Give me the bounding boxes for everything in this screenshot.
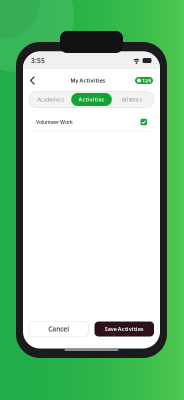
staticText: Cancel bbox=[48, 325, 69, 333]
button[interactable]: Cancel bbox=[29, 321, 88, 336]
button[interactable]: Points bbox=[135, 77, 153, 84]
staticText: Save Activities bbox=[105, 325, 144, 333]
staticText: 3:55 bbox=[31, 56, 45, 65]
staticText: Athletics bbox=[122, 96, 143, 103]
button[interactable]: Academics bbox=[30, 93, 71, 106]
staticText: Activities bbox=[78, 96, 104, 103]
staticText: 124 bbox=[142, 77, 151, 84]
button[interactable]: Athletics bbox=[112, 93, 152, 106]
button[interactable]: Volunteer Work bbox=[23, 113, 160, 130]
button[interactable]: Save Activities bbox=[94, 321, 154, 336]
staticText: My Activities bbox=[70, 77, 105, 84]
staticText: Academics bbox=[37, 96, 64, 103]
staticText: Volunteer Work bbox=[36, 118, 73, 126]
button[interactable]: Back bbox=[30, 72, 41, 89]
button[interactable]: Activities bbox=[71, 93, 112, 106]
